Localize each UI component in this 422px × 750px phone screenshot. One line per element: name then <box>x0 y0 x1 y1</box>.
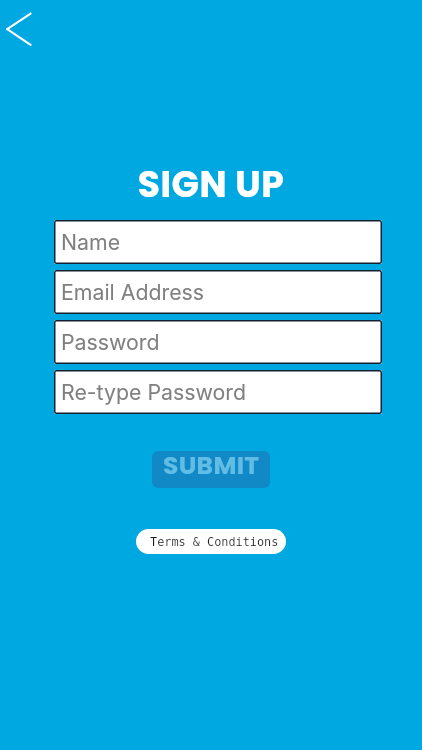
button[interactable]: Back <box>0 4 50 54</box>
button[interactable]: Name <box>54 220 382 264</box>
staticText: SIGN UP <box>0 159 422 750</box>
button[interactable]: Re-type Password <box>54 370 382 414</box>
staticText: Re-type Password <box>61 379 246 405</box>
button[interactable]: Terms & Conditions <box>136 529 286 554</box>
staticText: SUBMIT <box>163 451 260 483</box>
staticText: Terms & Conditions <box>150 535 279 549</box>
button[interactable]: Email Address <box>54 270 382 314</box>
button[interactable]: SUBMIT <box>152 451 270 488</box>
staticText: Email Address <box>61 279 205 305</box>
staticText: Password <box>61 329 160 355</box>
button[interactable]: Password <box>54 320 382 364</box>
staticText: Name <box>61 229 121 255</box>
